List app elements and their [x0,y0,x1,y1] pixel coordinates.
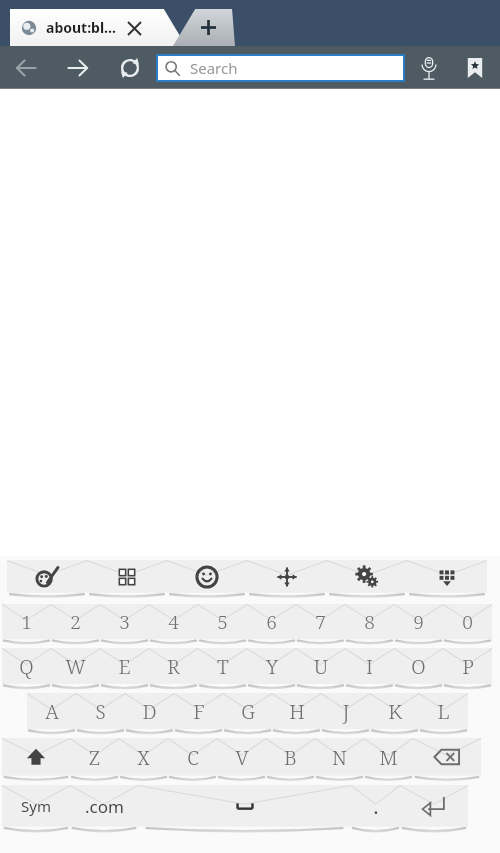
button[interactable]: C [168,738,217,785]
staticText: D [142,698,157,725]
button[interactable]: Voice search [405,46,452,89]
button[interactable]: about:bl… [10,9,186,46]
button[interactable]: New tab [173,9,235,46]
staticText: H [289,698,305,725]
staticText: 8 [364,609,375,635]
staticText: 3 [119,609,130,635]
button[interactable]: 9 [394,604,443,648]
button[interactable]: A [27,693,76,738]
staticText: P [462,653,474,680]
button[interactable]: K [370,693,419,738]
button[interactable]: Sym [2,785,70,837]
staticText: Search [190,58,238,78]
button[interactable]: 4 [149,604,198,648]
staticText: Y [266,653,278,680]
button[interactable]: O [394,648,443,693]
staticText: 6 [266,609,277,635]
button[interactable]: Theme [7,560,87,601]
button[interactable]: Y [247,648,296,693]
button[interactable]: W [51,648,100,693]
staticText: 4 [168,609,179,635]
staticText: 1 [21,609,32,635]
button[interactable]: Shift [2,738,70,785]
button[interactable]: .com [70,785,138,837]
button[interactable]: 6 [247,604,296,648]
button[interactable]: Reload [104,46,156,89]
staticText: S [95,698,106,725]
staticText: about:bl… [46,18,117,37]
staticText: 2 [70,609,81,635]
button[interactable]: H [272,693,321,738]
staticText: T [217,653,229,680]
staticText: . [373,793,379,820]
staticText: V [235,744,249,771]
button[interactable]: S [76,693,125,738]
staticText: R [167,653,180,680]
staticText: A [45,698,59,725]
staticText: U [314,653,328,680]
button[interactable]: 1 [2,604,51,648]
staticText: Q [19,653,34,680]
button[interactable]: E [100,648,149,693]
staticText: K [388,698,402,725]
button[interactable]: 8 [345,604,394,648]
button[interactable]: G [223,693,272,738]
staticText: O [411,653,426,680]
button[interactable]: M [364,738,413,785]
button[interactable]: Back [0,46,52,89]
button[interactable]: 7 [296,604,345,648]
staticText: N [332,744,347,771]
button[interactable]: Numbers [87,560,167,601]
staticText: Z [89,744,100,771]
button[interactable]: Forward [52,46,104,89]
button[interactable]: 0 [443,604,492,648]
button[interactable]: Z [70,738,119,785]
button[interactable]: F [174,693,223,738]
staticText: Sym [21,796,51,816]
staticText: E [118,653,131,680]
button[interactable]: T [198,648,247,693]
staticText: 7 [315,609,326,635]
staticText: C [187,744,199,771]
button[interactable]: U [296,648,345,693]
button[interactable]: P [443,648,492,693]
button[interactable]: N [315,738,364,785]
staticText: B [284,744,297,771]
button[interactable]: Settings [327,560,407,601]
staticText: M [379,744,398,771]
button[interactable]: Space [138,785,351,837]
button[interactable]: R [149,648,198,693]
button[interactable]: Emoji [167,560,247,601]
staticText: 0 [462,609,473,635]
button[interactable]: 5 [198,604,247,648]
staticText: W [65,653,86,680]
staticText: 5 [217,609,228,635]
button[interactable]: Close tab [124,18,144,38]
button[interactable]: D [125,693,174,738]
staticText: 9 [413,609,424,635]
button[interactable]: Enter [400,785,468,837]
button[interactable]: X [119,738,168,785]
button[interactable]: I [345,648,394,693]
button[interactable]: 2 [51,604,100,648]
button[interactable]: B [266,738,315,785]
button[interactable]: Bookmarks [452,46,498,89]
button[interactable]: Move cursor [247,560,327,601]
staticText: .com [85,795,124,818]
button[interactable]: . [351,785,400,837]
staticText: G [241,698,255,725]
staticText: L [437,698,450,725]
button[interactable]: Backspace [413,738,481,785]
button[interactable]: Hide keyboard [407,560,487,601]
button[interactable]: J [321,693,370,738]
button[interactable]: Search [158,56,403,80]
staticText: X [137,744,150,771]
staticText: F [193,698,205,725]
staticText: J [342,698,350,725]
staticText: I [366,653,373,680]
button[interactable]: V [217,738,266,785]
button[interactable]: L [419,693,468,738]
button[interactable]: 3 [100,604,149,648]
button[interactable]: Q [2,648,51,693]
